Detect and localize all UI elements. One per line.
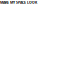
staticText: MAKE MY SPACE LOOK bbox=[0, 0, 37, 5]
